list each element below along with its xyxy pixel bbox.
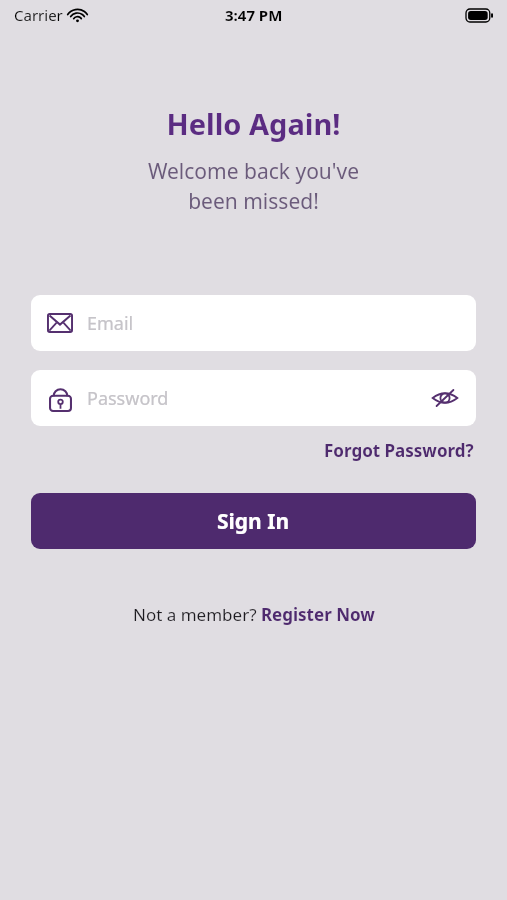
button[interactable]: Sign In xyxy=(31,493,476,549)
staticText: Password xyxy=(87,386,428,411)
button[interactable]: Not a member? Register Now xyxy=(129,599,379,630)
button[interactable]: Show password xyxy=(428,381,462,415)
staticText: Hello Again! xyxy=(0,104,507,143)
button[interactable]: Password xyxy=(31,370,476,426)
button[interactable]: Email xyxy=(31,295,476,351)
staticText: Sign In xyxy=(217,507,290,536)
staticText: Welcome back you've been missed! xyxy=(0,157,507,215)
staticText: Forgot Password? xyxy=(324,439,474,462)
staticText: Email xyxy=(87,311,462,336)
staticText: Carrier xyxy=(14,5,63,25)
staticText: 3:47 PM xyxy=(225,5,283,25)
button[interactable]: Forgot Password? xyxy=(322,436,476,465)
staticText: Not a member? Register Now xyxy=(133,603,375,626)
